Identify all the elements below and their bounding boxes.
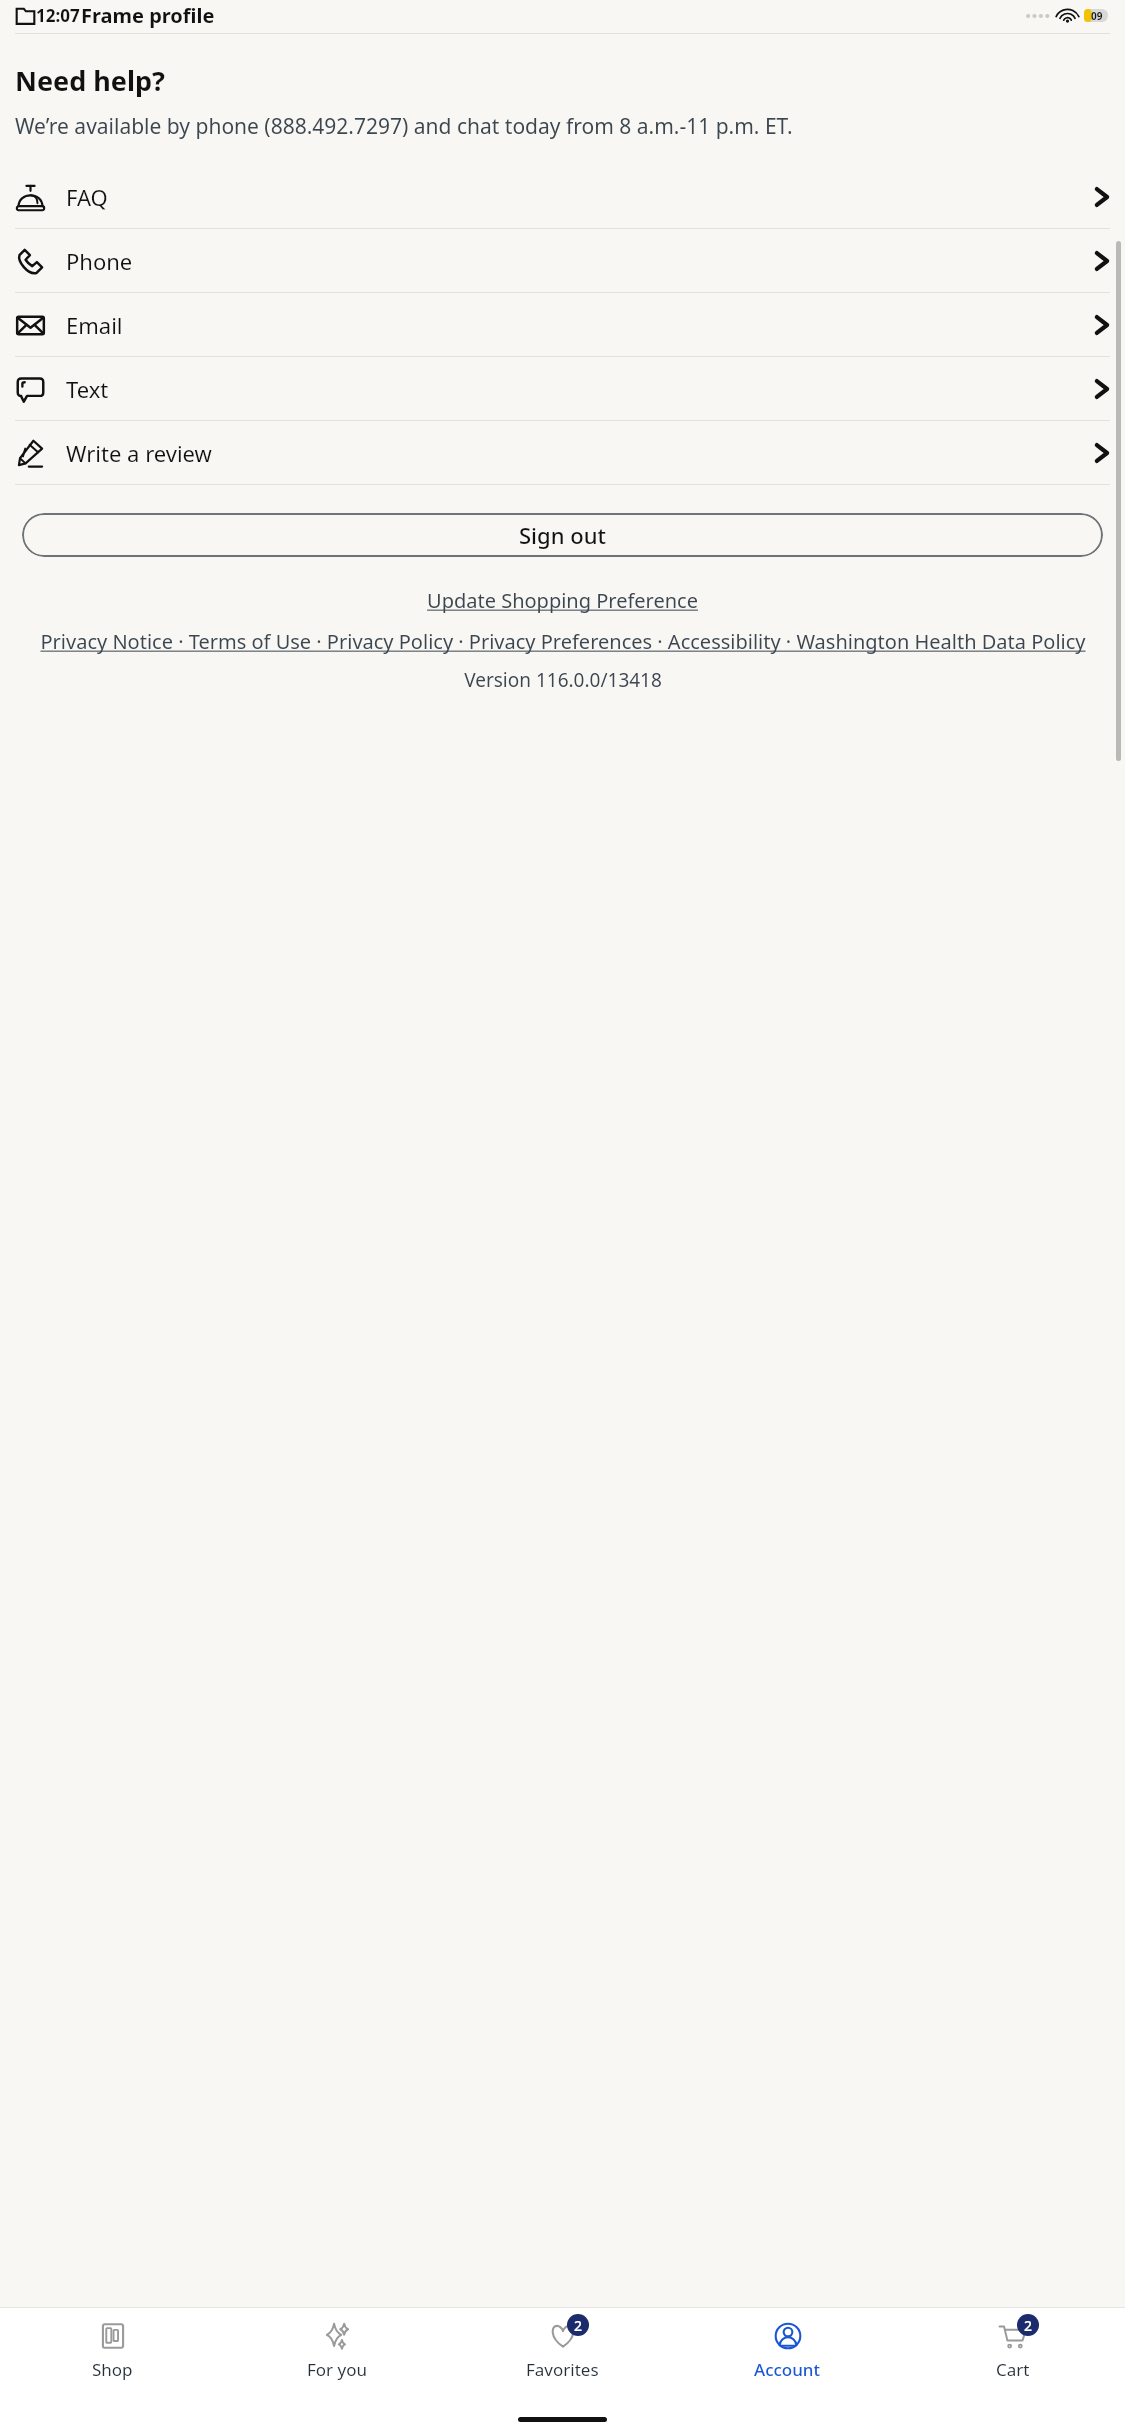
button[interactable]: For you <box>225 2308 450 2402</box>
staticText: 2 <box>1024 2316 1033 2335</box>
staticText: 2 <box>574 2316 583 2335</box>
staticText: 09 <box>1091 9 1103 22</box>
staticText: Privacy Notice · Terms of Use · Privacy … <box>40 628 1086 655</box>
button[interactable]: Account <box>675 2308 900 2402</box>
staticText: Update Shopping Preference <box>427 587 698 614</box>
button[interactable]: FAQ <box>0 165 1125 228</box>
button[interactable]: 2 <box>900 2308 1125 2402</box>
staticText: We’re available by phone (888.492.7297) … <box>15 112 793 141</box>
staticText: Text <box>66 374 109 404</box>
staticText: Frame profile <box>81 2 215 29</box>
staticText: Shop <box>92 2358 133 2381</box>
button[interactable]: Email <box>0 293 1125 356</box>
button[interactable]: 2 <box>450 2308 675 2402</box>
button[interactable]: Update Shopping Preference <box>427 587 698 614</box>
staticText: Sign out <box>519 520 606 550</box>
button[interactable]: Shop <box>0 2308 225 2402</box>
staticText: Email <box>66 310 123 340</box>
staticText: Phone <box>66 246 133 276</box>
button[interactable]: Write a review <box>0 421 1125 484</box>
button[interactable]: Text <box>0 357 1125 420</box>
staticText: Version 116.0.0/13418 <box>464 667 662 693</box>
button[interactable]: Sign out <box>22 513 1103 557</box>
button[interactable]: Privacy Notice · Terms of Use · Privacy … <box>40 628 1086 655</box>
staticText: Account <box>754 2358 821 2381</box>
staticText: Write a review <box>66 438 212 468</box>
staticText: FAQ <box>66 182 108 212</box>
staticText: Cart <box>996 2358 1030 2381</box>
staticText: Favorites <box>526 2358 599 2381</box>
staticText: For you <box>307 2358 368 2381</box>
button[interactable]: Phone <box>0 229 1125 292</box>
staticText: 12:07 <box>36 4 80 27</box>
staticText: Need help? <box>15 62 165 99</box>
